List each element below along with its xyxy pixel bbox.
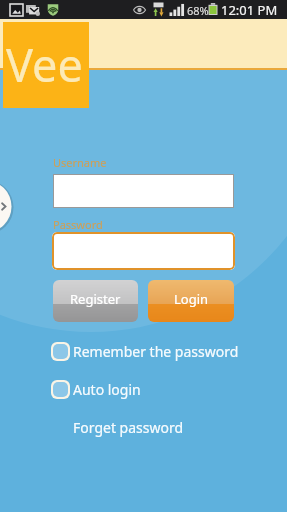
button[interactable] (53, 174, 234, 208)
staticText: 68% (187, 3, 209, 18)
button[interactable] (52, 232, 235, 270)
staticText: Vee (6, 34, 83, 95)
button[interactable]: Register (53, 280, 138, 322)
staticText: 12:01 PM (221, 1, 278, 19)
staticText: Remember the password (73, 342, 239, 361)
button[interactable]: Auto login (51, 379, 141, 399)
button[interactable]: Forget password (67, 412, 190, 443)
staticText: Register (70, 290, 121, 308)
button[interactable]: Open menu (0, 181, 13, 232)
staticText: Forget password (73, 418, 184, 437)
staticText: Auto login (73, 380, 141, 399)
button[interactable]: Remember the password (51, 341, 239, 361)
staticText: Login (174, 290, 209, 308)
staticText: Username (53, 155, 107, 170)
staticText: Password (53, 217, 103, 232)
button[interactable]: Login (148, 280, 234, 322)
